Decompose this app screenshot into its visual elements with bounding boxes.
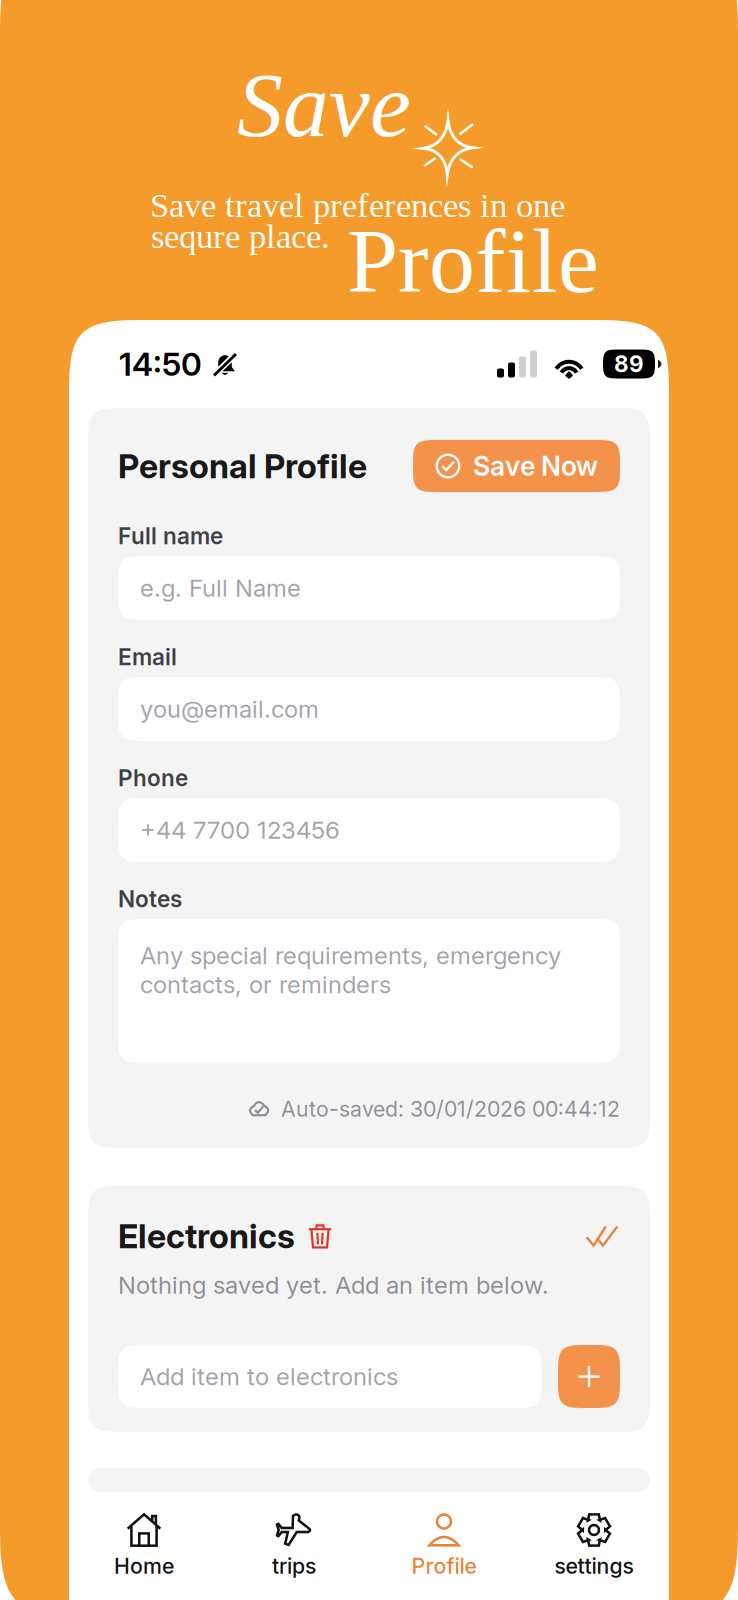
button[interactable]: Save Now bbox=[413, 440, 620, 492]
staticText: 89 bbox=[614, 350, 644, 378]
button[interactable]: Home bbox=[69, 1506, 219, 1585]
staticText: +44 7700 123456 bbox=[140, 815, 340, 844]
staticText: you@email.com bbox=[140, 694, 319, 723]
staticText: Nothing saved yet. Add an item below. bbox=[118, 1270, 549, 1299]
button[interactable]: Mark all packed bbox=[584, 1218, 620, 1254]
staticText: Save bbox=[237, 54, 411, 156]
staticText: e.g. Full Name bbox=[140, 573, 301, 602]
button[interactable]: settings bbox=[519, 1506, 669, 1585]
staticText: Notes bbox=[118, 885, 182, 913]
button[interactable]: Profile bbox=[369, 1506, 519, 1585]
staticText: Email bbox=[118, 643, 177, 671]
staticText: Auto-saved: 30/01/2026 00:44:12 bbox=[281, 1096, 620, 1122]
staticText: Profile bbox=[347, 210, 599, 312]
staticText: Electronics bbox=[118, 1216, 295, 1256]
staticText: Home bbox=[114, 1553, 174, 1579]
staticText: Any special requirements, emergency cont… bbox=[140, 941, 561, 999]
staticText: Profile bbox=[411, 1553, 476, 1579]
staticText: sequre place. bbox=[151, 217, 330, 255]
staticText: Phone bbox=[118, 764, 188, 792]
staticText: Save travel preferences in one bbox=[150, 186, 565, 224]
staticText: 14:50 bbox=[119, 345, 202, 383]
button[interactable]: Delete list bbox=[303, 1219, 337, 1253]
staticText: Add item to electronics bbox=[140, 1362, 398, 1391]
button[interactable]: trips bbox=[219, 1506, 369, 1585]
staticText: settings bbox=[554, 1553, 633, 1579]
staticText: Personal Profile bbox=[118, 446, 367, 486]
staticText: Save Now bbox=[473, 450, 598, 482]
staticText: trips bbox=[272, 1553, 316, 1579]
staticText: Full name bbox=[118, 522, 223, 550]
button[interactable]: Add item bbox=[558, 1345, 620, 1408]
